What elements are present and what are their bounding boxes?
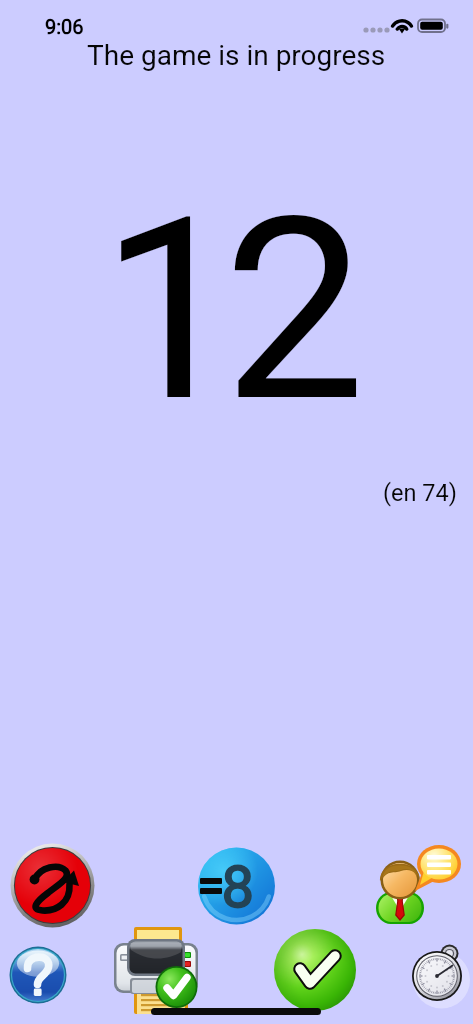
button[interactable]: Undo last move (9, 842, 96, 929)
button[interactable]: Help (8, 945, 69, 1006)
button[interactable]: Timer (405, 940, 473, 1006)
staticText: 9:06 (45, 15, 84, 38)
button[interactable]: Show score (196, 847, 277, 926)
staticText: The game is in progress (87, 39, 386, 72)
button[interactable]: Print results (110, 926, 202, 1018)
button[interactable]: Players and chat (375, 842, 467, 930)
staticText: (en 74) (383, 479, 457, 507)
button[interactable]: Validate (272, 927, 358, 1013)
staticText: 12 (100, 162, 347, 458)
